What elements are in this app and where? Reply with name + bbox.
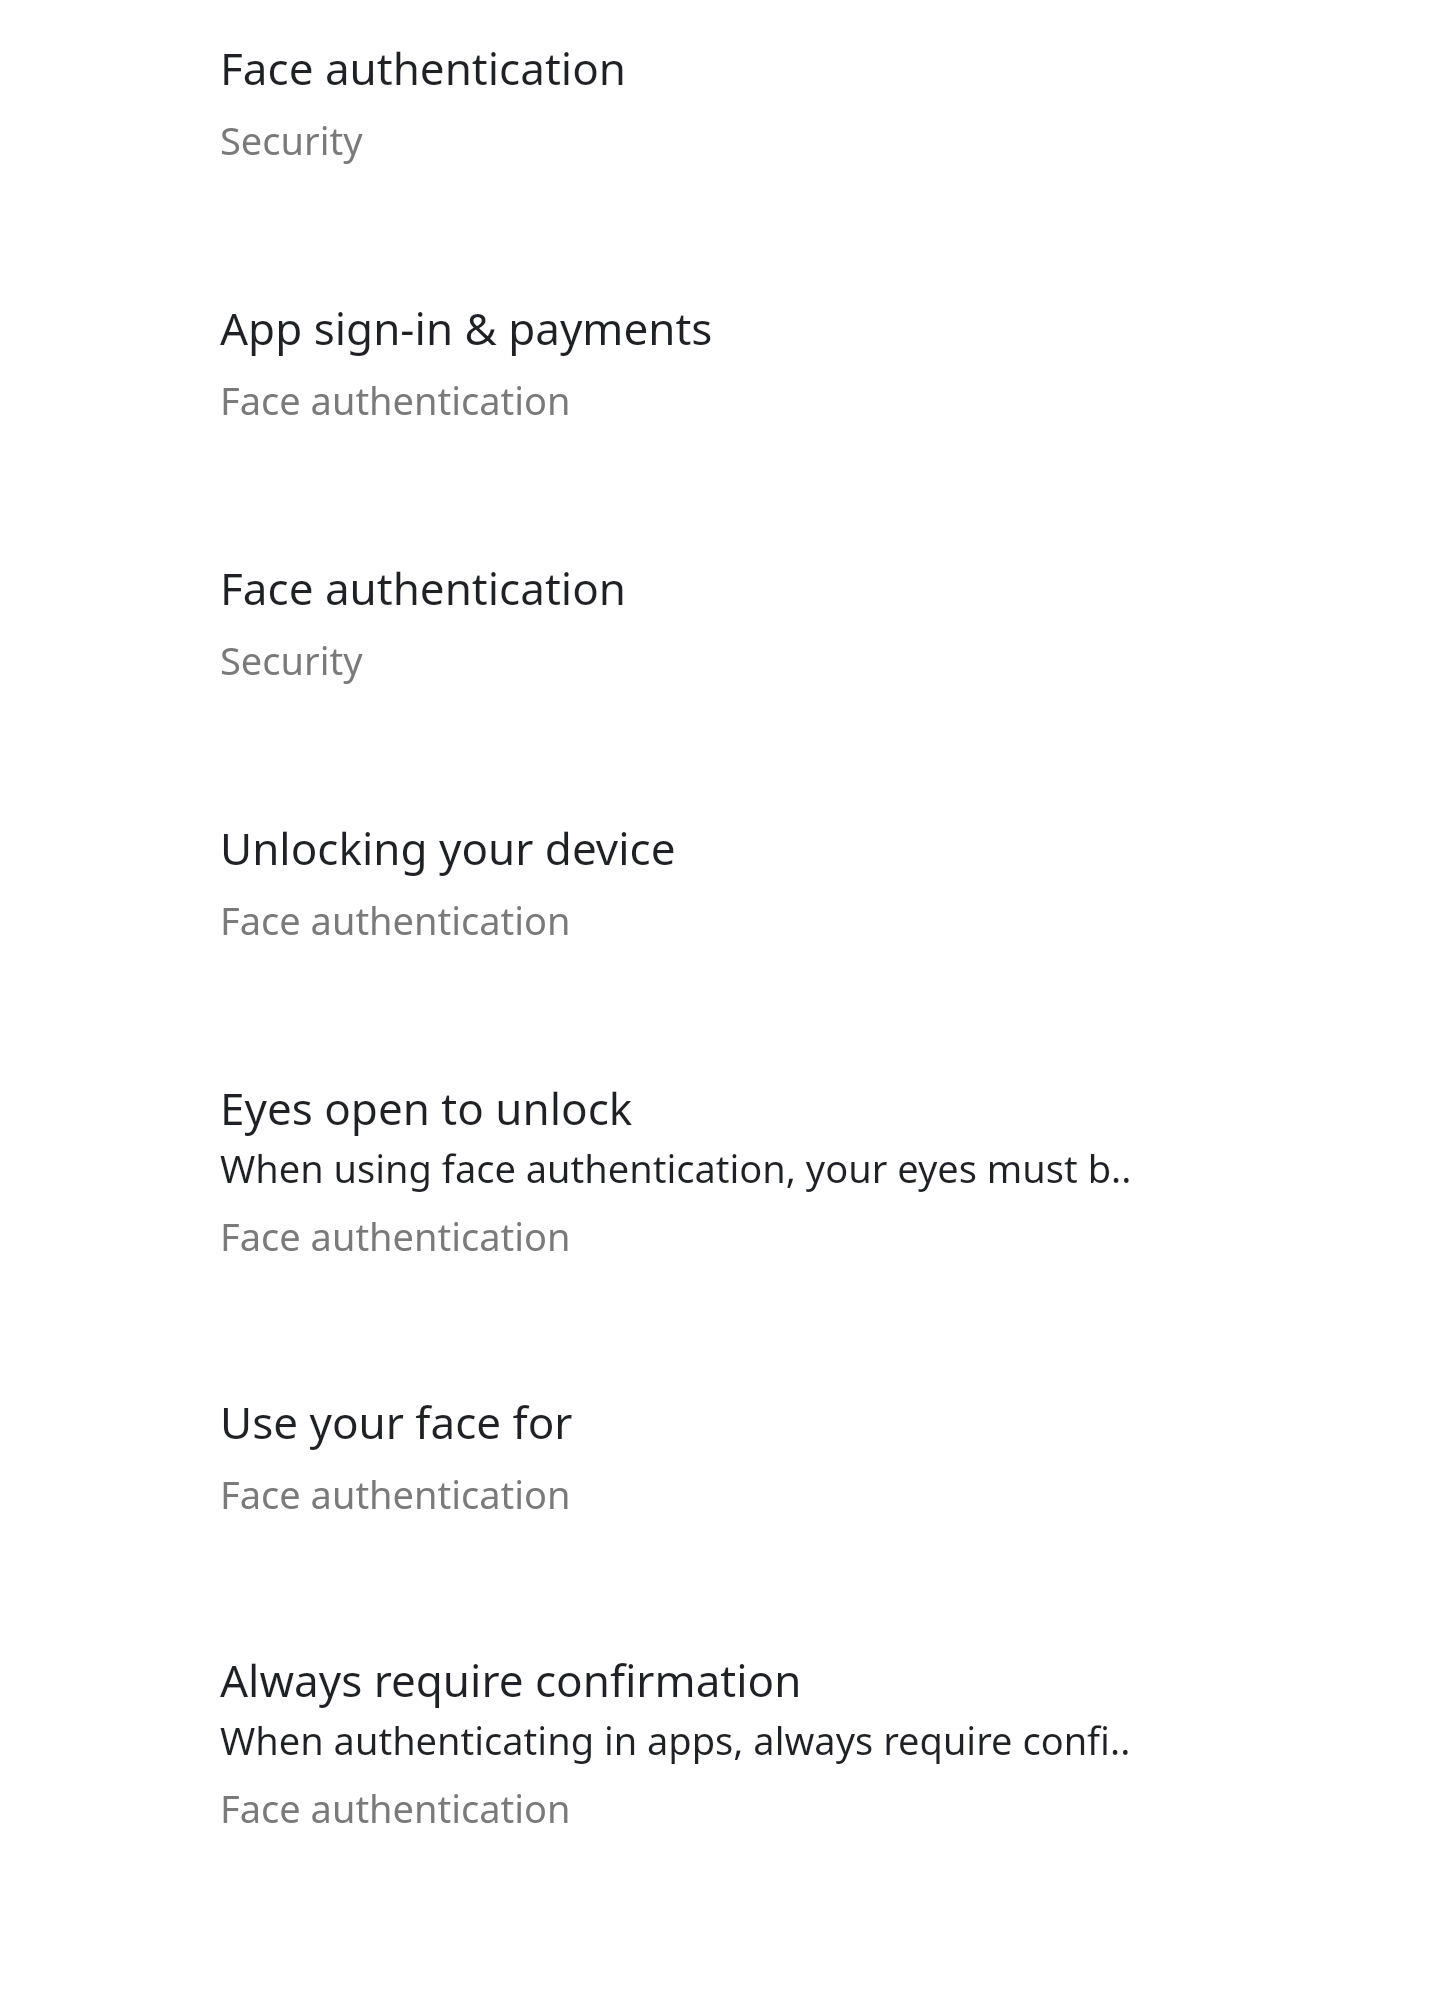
staticText: Face authentication [220,1468,571,1520]
staticText: Always require confirmation [220,1650,802,1710]
staticText: Use your face for [220,1392,573,1452]
staticText: Eyes open to unlock [220,1078,633,1138]
button[interactable]: Eyes open to unlock [0,946,1440,1262]
staticText: Face authentication [220,1782,571,1834]
staticText: Face authentication [220,374,571,426]
staticText: Security [220,114,363,166]
button[interactable]: Use your face for [0,1262,1440,1520]
button[interactable]: App sign-in & payments [0,166,1440,426]
staticText: Face authentication [220,38,626,98]
staticText: Security [220,634,363,686]
staticText: Face authentication [220,1210,571,1262]
button[interactable]: Always require confirmation [0,1520,1440,1834]
button[interactable]: Face authentication [0,426,1440,686]
staticText: Unlocking your device [220,818,676,878]
staticText: App sign-in & payments [220,298,713,358]
staticText: Face authentication [220,558,626,618]
staticText: Face authentication [220,894,571,946]
button[interactable]: Face authentication [0,0,1440,166]
button[interactable]: Unlocking your device [0,686,1440,946]
staticText: When authenticating in apps, always requ… [220,1714,1131,1766]
staticText: When using face authentication, your eye… [220,1142,1132,1194]
